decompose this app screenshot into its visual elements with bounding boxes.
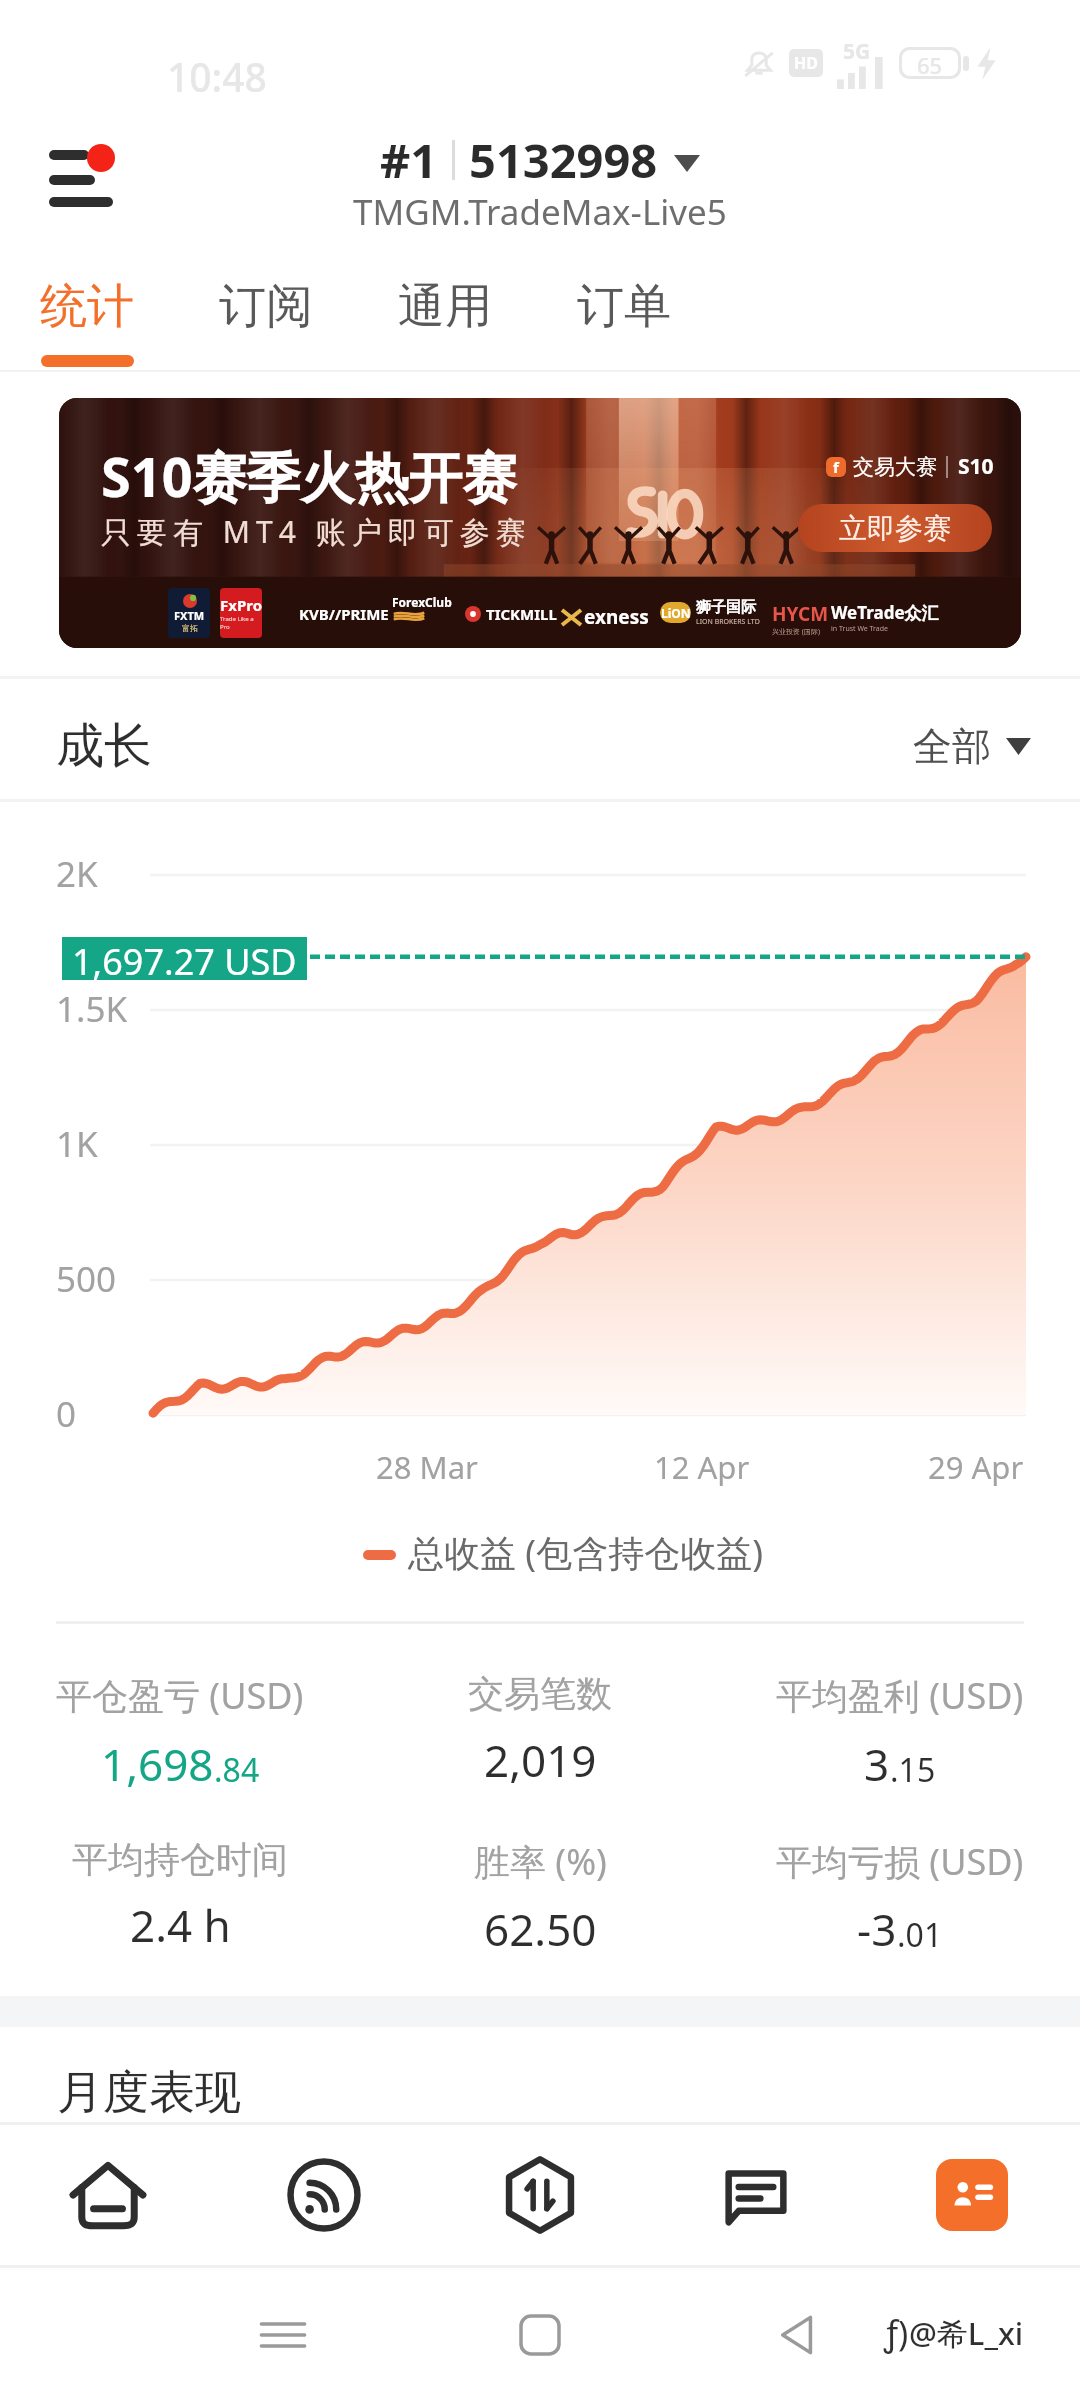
staticText: 兴业投资 (国际) xyxy=(772,627,821,637)
staticText: 月度表现 xyxy=(57,2064,241,2122)
staticText: 通用 xyxy=(398,277,492,336)
staticText: WeTrade众汇 xyxy=(831,601,939,624)
staticText: 62.50 xyxy=(484,1899,597,1959)
button[interactable]: Home xyxy=(0,2122,216,2267)
staticText: 2K xyxy=(56,850,98,898)
staticText: 12 Apr xyxy=(654,1446,750,1488)
button[interactable]: Home xyxy=(509,2304,571,2366)
staticText: 1K xyxy=(56,1120,98,1168)
staticText: 统计 xyxy=(40,277,134,336)
button[interactable]: 通用 xyxy=(386,277,503,381)
staticText: FXTM xyxy=(174,608,205,623)
staticText: 胜率 (%) xyxy=(474,1837,607,1886)
staticText: 500 xyxy=(56,1255,117,1303)
button[interactable]: Signals xyxy=(216,2122,432,2267)
staticText: S10赛季火热开赛 xyxy=(101,439,517,513)
staticText: FxPro xyxy=(220,595,262,615)
button[interactable]: 订单 xyxy=(565,277,682,381)
staticText: S10 xyxy=(958,452,994,481)
staticText: 平均亏损 (USD) xyxy=(776,1837,1024,1886)
staticText: in Trust We Trade xyxy=(831,624,889,634)
staticText: 0 xyxy=(56,1390,77,1438)
staticText: 平均盈利 (USD) xyxy=(776,1671,1024,1720)
staticText: 1,697.27 USD xyxy=(72,937,297,980)
staticText: ƒ) xyxy=(884,2310,909,2356)
staticText: 28 Mar xyxy=(376,1446,478,1488)
staticText: @希L_xi xyxy=(909,2312,1024,2354)
button[interactable]: 统计 xyxy=(28,277,145,381)
staticText: 10:48 xyxy=(167,50,267,103)
staticText: 狮子国际 xyxy=(696,598,756,617)
staticText: 订单 xyxy=(577,277,671,336)
staticText: 5132998 xyxy=(469,128,658,192)
staticText: 3 xyxy=(864,1734,890,1794)
staticText: KVB//PRIME xyxy=(299,604,389,624)
button[interactable]: S10 赛季火热开赛 banner xyxy=(59,398,1021,648)
button[interactable]: 立即参赛 xyxy=(798,504,992,552)
staticText: HYCM xyxy=(772,601,829,627)
button[interactable]: Menu xyxy=(28,118,144,234)
staticText: 全部 xyxy=(913,722,991,771)
staticText: 1,698 xyxy=(101,1734,214,1794)
staticText: 2.4 h xyxy=(130,1895,231,1955)
staticText: 总收益 (包含持仓收益) xyxy=(408,1528,763,1577)
staticText: TMGM.TradeMax-Live5 xyxy=(353,188,727,236)
staticText: 5G xyxy=(843,37,871,66)
staticText: 平均持仓时间 xyxy=(72,1837,288,1882)
staticText: HD xyxy=(794,52,818,74)
staticText: LION BROKERS LTD xyxy=(696,617,760,627)
staticText: exness xyxy=(584,604,649,630)
staticText: .15 xyxy=(890,1748,936,1792)
staticText: 交易大赛 xyxy=(853,454,937,480)
button[interactable]: Trade xyxy=(432,2122,648,2267)
button[interactable]: Filter: 全部 xyxy=(905,714,1039,779)
staticText: 富拓 xyxy=(182,623,198,633)
staticText: .84 xyxy=(214,1748,260,1792)
staticText: #1 xyxy=(380,128,438,192)
button[interactable]: Messages xyxy=(648,2122,864,2267)
staticText: 29 Apr xyxy=(928,1446,1024,1488)
staticText: 2,019 xyxy=(484,1730,597,1790)
staticText: 成长 xyxy=(56,716,152,776)
staticText: 交易笔数 xyxy=(468,1671,612,1716)
button[interactable]: Select account xyxy=(372,126,708,194)
staticText: 65 xyxy=(917,50,943,76)
staticText: ForexClub xyxy=(392,594,452,610)
button[interactable]: Back xyxy=(766,2304,828,2366)
staticText: 平仓盈亏 (USD) xyxy=(56,1671,304,1720)
button[interactable]: 订阅 xyxy=(207,277,324,381)
staticText: LiON xyxy=(661,605,691,621)
staticText: -3 xyxy=(857,1899,897,1959)
staticText: 只要有 MT4 账户即可参赛 xyxy=(101,511,532,552)
staticText: .01 xyxy=(897,1913,943,1957)
button[interactable]: Profile xyxy=(864,2122,1080,2267)
staticText: 立即参赛 xyxy=(839,511,951,546)
staticText: Trade Like a Pro xyxy=(220,615,262,631)
staticText: TICKMILL xyxy=(486,604,557,624)
button[interactable]: Recents xyxy=(252,2304,314,2366)
staticText: f xyxy=(833,457,839,477)
staticText: 1.5K xyxy=(56,985,128,1033)
staticText: 订阅 xyxy=(219,277,313,336)
